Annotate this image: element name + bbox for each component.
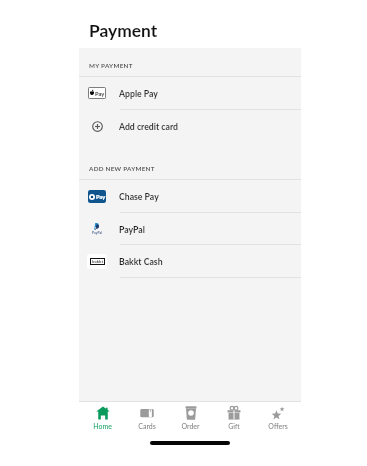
- button[interactable]: PayPal: [79, 213, 301, 245]
- staticText: Order: [181, 422, 200, 430]
- button[interactable]: Cards: [126, 402, 167, 431]
- button[interactable]: Home: [82, 402, 123, 431]
- staticText: Home: [93, 422, 112, 430]
- staticText: PayPal: [92, 231, 103, 235]
- staticText: Apple Pay: [119, 88, 158, 98]
- staticText: Chase Pay: [119, 191, 159, 201]
- button[interactable]: Offers: [257, 402, 298, 431]
- staticText: PayPal: [119, 224, 145, 234]
- button[interactable]: Add credit card: [79, 110, 301, 142]
- staticText: ADD NEW PAYMENT: [89, 165, 155, 173]
- staticText: Payment: [89, 20, 158, 41]
- button[interactable]: Pay: [79, 180, 301, 212]
- button[interactable]: Gift: [213, 402, 254, 431]
- button[interactable]: Order: [170, 402, 211, 431]
- staticText: Pay: [95, 90, 105, 97]
- button[interactable]: Pay: [79, 77, 301, 109]
- staticText: MY PAYMENT: [89, 62, 133, 70]
- staticText: Gift: [228, 422, 240, 430]
- staticText: Add credit card: [119, 121, 178, 131]
- staticText: Offers: [268, 422, 288, 430]
- staticText: Cards: [138, 422, 156, 430]
- staticText: Bakkt Cash: [119, 256, 163, 266]
- staticText: Pay: [96, 193, 106, 200]
- button[interactable]: bakkt: [79, 245, 301, 277]
- staticText: bakkt: [92, 259, 104, 264]
